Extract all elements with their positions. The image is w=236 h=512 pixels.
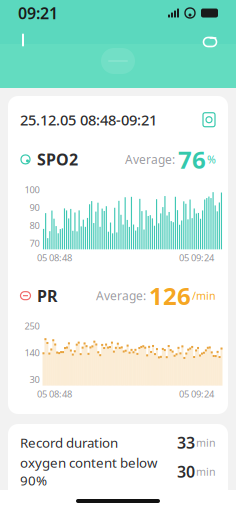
staticText: 100 <box>24 183 39 196</box>
staticText: 250 <box>24 320 39 332</box>
staticText: 140 <box>24 346 39 359</box>
staticText: Average: <box>125 151 175 167</box>
staticText: 05 09:24 <box>179 388 214 400</box>
staticText: 126 <box>149 280 191 312</box>
staticText: 05 09:24 <box>179 251 214 264</box>
button[interactable]: Record duration <box>8 428 228 457</box>
staticText: 90 <box>29 201 39 214</box>
staticText: 76 <box>178 143 206 175</box>
staticText: PR <box>37 285 57 306</box>
staticText: 33 <box>177 432 195 453</box>
staticText: Average: <box>96 288 146 304</box>
staticText: 30 <box>177 461 195 482</box>
staticText: min <box>196 464 216 479</box>
button[interactable]: oxygen content below 90% <box>8 457 228 486</box>
staticText: /min <box>192 289 216 303</box>
button[interactable]: Average oxygen <box>8 486 228 512</box>
button[interactable]: Share <box>192 26 228 54</box>
staticText: oxygen content below 90% <box>20 454 157 489</box>
staticText: 70 <box>29 237 39 249</box>
button[interactable]: Back <box>8 26 40 54</box>
staticText: 25.12.05 08:48-09:21 <box>20 110 157 129</box>
staticText: 05 08:48 <box>37 251 72 264</box>
staticText: 80 <box>29 219 39 231</box>
button[interactable]: Report <box>202 112 216 128</box>
staticText: 09:21 <box>18 2 58 24</box>
staticText: min <box>196 435 216 450</box>
staticText: 30 <box>29 373 39 386</box>
staticText: Average oxygen <box>20 492 121 509</box>
staticText: Record duration <box>20 434 118 451</box>
staticText: 05 08:48 <box>37 388 72 400</box>
staticText: SPO2 <box>37 149 78 170</box>
staticText: % <box>207 152 216 166</box>
